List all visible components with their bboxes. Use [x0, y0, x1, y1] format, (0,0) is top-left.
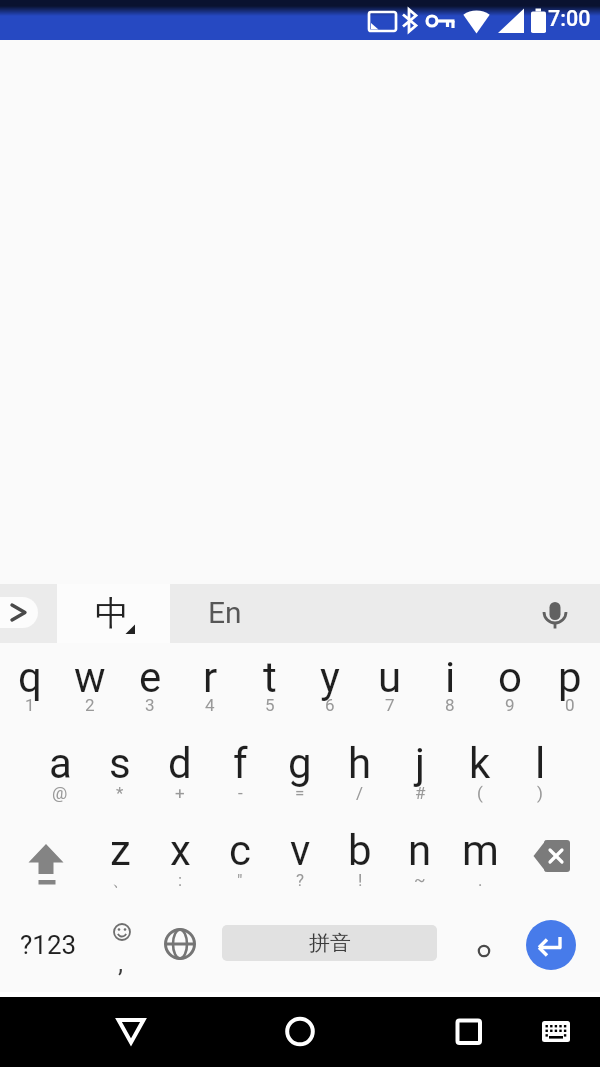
- staticText: 5: [265, 695, 275, 715]
- staticText: 拼音: [309, 930, 351, 956]
- staticText: d: [168, 739, 192, 788]
- staticText: En: [208, 595, 242, 630]
- staticText: .: [478, 870, 483, 890]
- staticText: ): [537, 783, 543, 803]
- button[interactable]: [527, 585, 583, 641]
- staticText: 2: [85, 695, 95, 715]
- button[interactable]: b: [330, 817, 390, 903]
- staticText: g: [288, 739, 312, 788]
- button[interactable]: [270, 1002, 330, 1062]
- staticText: 、: [112, 870, 129, 891]
- button[interactable]: z: [90, 817, 150, 903]
- button[interactable]: p: [540, 643, 600, 729]
- staticText: 8: [445, 695, 455, 715]
- staticText: 9: [505, 695, 515, 715]
- staticText: b: [348, 826, 372, 875]
- staticText: e: [139, 653, 162, 702]
- button[interactable]: [170, 584, 283, 643]
- staticText: +: [175, 783, 185, 803]
- staticText: ?123: [20, 930, 77, 960]
- button[interactable]: [10, 820, 85, 900]
- button[interactable]: 拼音: [222, 925, 437, 961]
- button[interactable]: l: [510, 730, 570, 816]
- button[interactable]: [455, 915, 513, 977]
- staticText: r: [203, 653, 218, 702]
- button[interactable]: e: [120, 643, 180, 729]
- staticText: w: [74, 653, 106, 702]
- button[interactable]: x: [150, 817, 210, 903]
- button[interactable]: i: [420, 643, 480, 729]
- button[interactable]: n: [390, 817, 450, 903]
- staticText: @: [52, 783, 68, 803]
- button[interactable]: d: [150, 730, 210, 816]
- staticText: ": [237, 870, 243, 890]
- staticText: k: [469, 739, 491, 788]
- button[interactable]: [438, 1002, 498, 1062]
- staticText: 7:00: [548, 6, 591, 31]
- button[interactable]: t: [240, 643, 300, 729]
- button[interactable]: q: [0, 643, 60, 729]
- staticText: :: [178, 870, 183, 890]
- button[interactable]: [526, 920, 576, 970]
- staticText: f: [233, 739, 248, 788]
- button[interactable]: [152, 916, 208, 972]
- staticText: q: [18, 653, 42, 702]
- staticText: 4: [205, 695, 215, 715]
- button[interactable]: [526, 1007, 576, 1057]
- staticText: =: [295, 783, 305, 803]
- button[interactable]: [518, 820, 590, 892]
- staticText: j: [415, 739, 426, 788]
- staticText: ~: [414, 870, 426, 890]
- button[interactable]: j: [390, 730, 450, 816]
- staticText: t: [263, 653, 277, 702]
- staticText: h: [348, 739, 372, 788]
- staticText: m: [462, 826, 499, 875]
- staticText: -: [238, 783, 243, 803]
- button[interactable]: [0, 597, 38, 628]
- button[interactable]: w: [60, 643, 120, 729]
- button[interactable]: a: [30, 730, 90, 816]
- staticText: 3: [145, 695, 155, 715]
- button[interactable]: [57, 584, 170, 643]
- button[interactable]: [92, 905, 150, 985]
- staticText: 7: [385, 695, 395, 715]
- staticText: 0: [565, 695, 575, 715]
- staticText: o: [498, 653, 522, 702]
- staticText: 中: [95, 592, 129, 635]
- button[interactable]: f: [210, 730, 270, 816]
- staticText: #: [415, 783, 426, 803]
- button[interactable]: y: [300, 643, 360, 729]
- staticText: n: [408, 826, 432, 875]
- staticText: c: [229, 826, 251, 875]
- staticText: ?: [296, 870, 305, 890]
- staticText: 6: [325, 695, 335, 715]
- button[interactable]: o: [480, 643, 540, 729]
- staticText: x: [170, 826, 191, 875]
- button[interactable]: k: [450, 730, 510, 816]
- button[interactable]: [101, 1002, 161, 1062]
- button[interactable]: s: [90, 730, 150, 816]
- staticText: v: [290, 826, 311, 875]
- staticText: s: [109, 739, 131, 788]
- button[interactable]: u: [360, 643, 420, 729]
- staticText: u: [378, 653, 402, 702]
- staticText: p: [558, 653, 582, 702]
- staticText: *: [116, 783, 124, 803]
- button[interactable]: m: [450, 817, 510, 903]
- button[interactable]: v: [270, 817, 330, 903]
- staticText: y: [320, 653, 340, 702]
- button[interactable]: c: [210, 817, 270, 903]
- staticText: /: [356, 783, 364, 803]
- staticText: z: [110, 826, 131, 875]
- staticText: !: [358, 870, 363, 890]
- button[interactable]: g: [270, 730, 330, 816]
- staticText: (: [477, 783, 483, 803]
- staticText: a: [49, 739, 72, 788]
- button[interactable]: ?123: [8, 905, 88, 985]
- button[interactable]: h: [330, 730, 390, 816]
- staticText: l: [535, 739, 546, 788]
- staticText: 1: [25, 695, 35, 715]
- staticText: i: [445, 653, 456, 702]
- staticText: ,: [118, 948, 124, 978]
- button[interactable]: r: [180, 643, 240, 729]
